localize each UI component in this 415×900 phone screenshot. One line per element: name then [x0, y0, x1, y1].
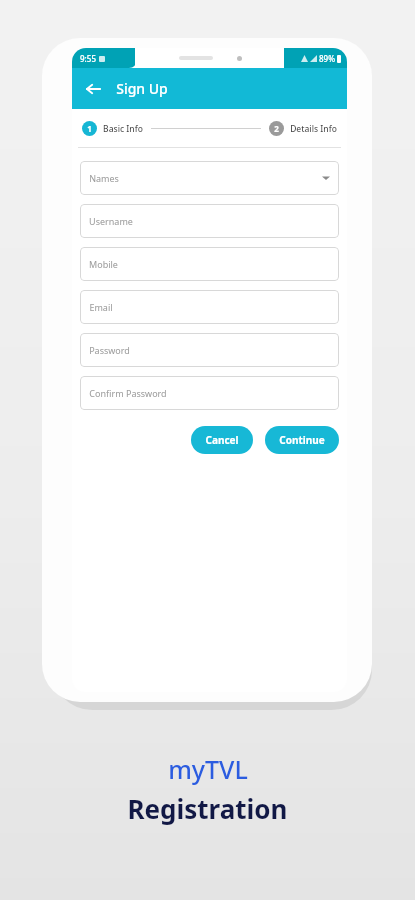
button[interactable]: Password	[80, 333, 339, 367]
staticText: Mobile	[89, 258, 118, 270]
button[interactable]: 1	[82, 121, 143, 136]
staticText: 9:55	[80, 53, 96, 64]
staticText: Continue	[279, 433, 325, 447]
button[interactable]: Continue	[265, 426, 339, 454]
button[interactable]: Cancel	[191, 426, 253, 454]
button[interactable]: Confirm Password	[80, 376, 339, 410]
staticText: Basic Info	[103, 123, 143, 135]
button[interactable]: Username	[80, 204, 339, 238]
staticText: Username	[89, 215, 133, 227]
button[interactable]: Mobile	[80, 247, 339, 281]
staticText: Email	[89, 301, 113, 313]
button[interactable]: Email	[80, 290, 339, 324]
staticText: 1	[87, 123, 92, 134]
staticText: Registration	[127, 791, 288, 826]
staticText: Names	[89, 172, 119, 184]
staticText: 89%	[319, 53, 335, 64]
staticText: Sign Up	[116, 79, 168, 98]
button[interactable]: Back	[78, 74, 108, 104]
staticText: Confirm Password	[89, 387, 167, 399]
button[interactable]: 2	[269, 121, 337, 136]
button[interactable]: Names	[80, 161, 339, 195]
staticText: 2	[274, 123, 279, 134]
staticText: myTVL	[168, 752, 248, 786]
staticText: Cancel	[205, 433, 239, 447]
staticText: Password	[89, 344, 130, 356]
staticText: Details Info	[290, 123, 337, 135]
